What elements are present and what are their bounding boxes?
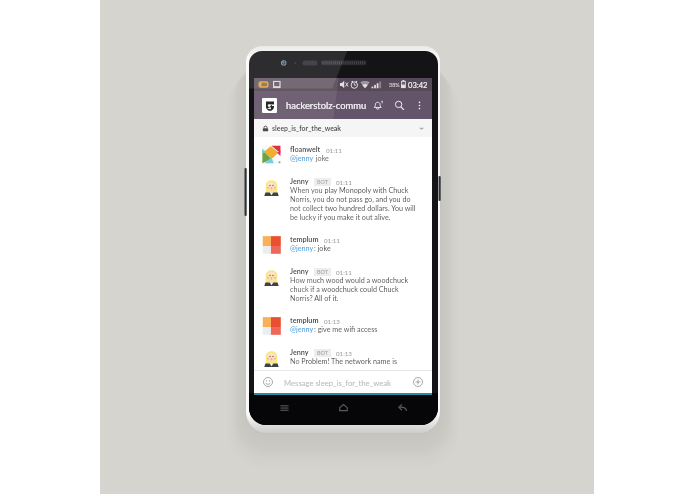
button[interactable]: Emoji: [263, 377, 273, 387]
staticText: : joke: [314, 244, 331, 253]
button[interactable]: Search: [391, 97, 407, 113]
staticText: 03:42: [408, 80, 428, 89]
staticText: : give me wifi access: [314, 325, 378, 334]
button[interactable]: Back: [373, 393, 432, 421]
button[interactable]: More options: [411, 97, 427, 113]
staticText: When you play Monopoly with Chuck Norris…: [290, 186, 416, 222]
staticText: 01:13: [336, 350, 352, 357]
staticText: Message sleep_is_for_the_weak: [284, 378, 391, 387]
staticText: 01:11: [324, 237, 340, 244]
button[interactable]: sleep_is_for_the_weak: [254, 119, 432, 137]
staticText: Jenny: [290, 267, 309, 276]
button[interactable]: Notifications: [370, 97, 386, 113]
button[interactable]: Home: [314, 393, 373, 421]
staticText: templum: [290, 316, 319, 325]
button[interactable]: floanwelt: [254, 145, 432, 177]
button[interactable]: Recent apps: [254, 393, 314, 421]
staticText: BOT: [317, 350, 328, 356]
staticText: 38%: [389, 82, 400, 88]
staticText: @jenny: [290, 154, 314, 163]
button[interactable]: Add attachment: [413, 377, 423, 387]
staticText: 01:13: [324, 318, 340, 325]
button[interactable]: templum: [254, 316, 432, 348]
button[interactable]: Jenny: [254, 177, 432, 235]
staticText: 01:11: [336, 269, 352, 276]
button[interactable]: Jenny: [254, 348, 432, 370]
staticText: Jenny: [290, 348, 309, 357]
staticText: templum: [290, 235, 319, 244]
button[interactable]: templum: [254, 235, 432, 267]
staticText: joke: [314, 154, 329, 163]
staticText: sleep_is_for_the_weak: [272, 124, 342, 132]
staticText: No Problem! The network name is: [290, 357, 397, 366]
staticText: @jenny: [290, 325, 314, 334]
staticText: How much wood would a woodchuck chuck if…: [290, 276, 416, 303]
staticText: Jenny: [290, 177, 309, 186]
staticText: 01:11: [326, 147, 342, 154]
staticText: floanwelt: [290, 145, 321, 154]
staticText: BOT: [317, 269, 328, 275]
staticText: @jenny: [290, 244, 314, 253]
button[interactable]: Jenny: [254, 267, 432, 316]
staticText: hackerstolz-commu: [286, 100, 367, 111]
staticText: 01:11: [336, 179, 352, 186]
staticText: BOT: [317, 179, 328, 185]
